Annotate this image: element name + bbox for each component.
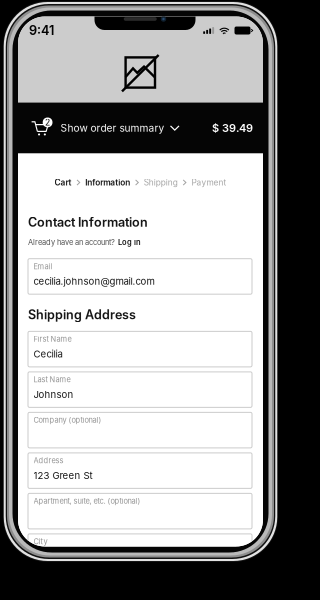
button[interactable]: Last Name (28, 372, 252, 407)
button[interactable]: City (28, 534, 252, 569)
button[interactable]: Log in (115, 238, 141, 247)
staticText: Address (33, 456, 63, 465)
button[interactable]: Company (optional) (28, 412, 252, 448)
staticText: 9:41 (29, 23, 54, 38)
staticText: Shipping Address (28, 307, 136, 322)
staticText: Show order summary (60, 122, 164, 134)
staticText: Already have an account? (28, 238, 115, 247)
button[interactable]: First Name (28, 331, 252, 367)
staticText: 2 (45, 117, 50, 127)
staticText: Apartment, suite, etc. (optional) (33, 497, 140, 506)
staticText: Log in (118, 238, 141, 247)
staticText: Email (33, 262, 52, 271)
button[interactable]: Apartment, suite, etc. (optional) (28, 493, 252, 529)
staticText: Cart (55, 177, 72, 187)
staticText: Information (85, 177, 130, 187)
button[interactable]: Address (28, 453, 252, 488)
staticText: Shipping (144, 177, 178, 187)
button[interactable]: Cart (55, 177, 72, 187)
staticText: cecilia.johnson@gmail.com (33, 275, 154, 287)
staticText: City (33, 537, 47, 546)
staticText: Contact Information (28, 214, 148, 230)
staticText: 123 Green St (33, 470, 92, 481)
button[interactable]: Information (85, 177, 130, 187)
staticText: Payment (191, 177, 226, 187)
button[interactable]: Email (28, 259, 252, 294)
staticText: Cecilia (33, 348, 62, 360)
button[interactable]: 2 (18, 102, 263, 153)
staticText: First Name (33, 335, 71, 344)
staticText: Last Name (33, 375, 70, 384)
staticText: Johnson (33, 389, 73, 400)
staticText: $ 39.49 (212, 121, 253, 135)
staticText: Company (optional) (33, 416, 101, 425)
